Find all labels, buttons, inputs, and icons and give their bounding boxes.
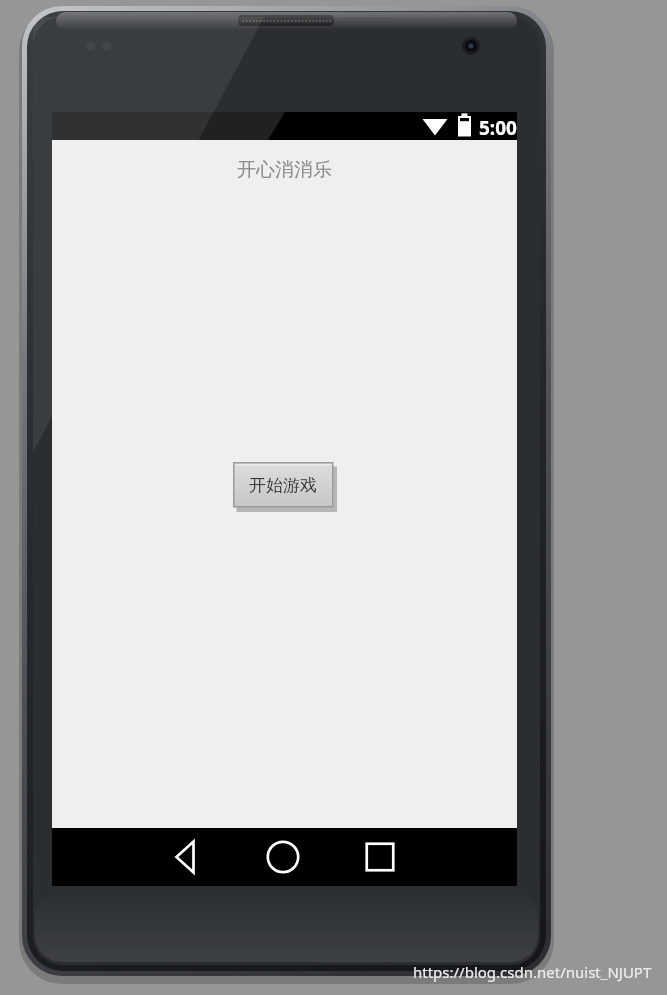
button[interactable]: Home bbox=[254, 833, 312, 881]
staticText: https://blog.csdn.net/nuist_NJUPT bbox=[413, 962, 652, 982]
button[interactable]: Recent apps bbox=[351, 833, 409, 881]
staticText: 开始游戏 bbox=[249, 475, 317, 496]
button[interactable]: 开始游戏 bbox=[233, 462, 337, 512]
button[interactable]: Back bbox=[156, 833, 214, 881]
staticText: 5:00 bbox=[479, 115, 517, 141]
staticText: 开心消消乐 bbox=[52, 158, 517, 188]
